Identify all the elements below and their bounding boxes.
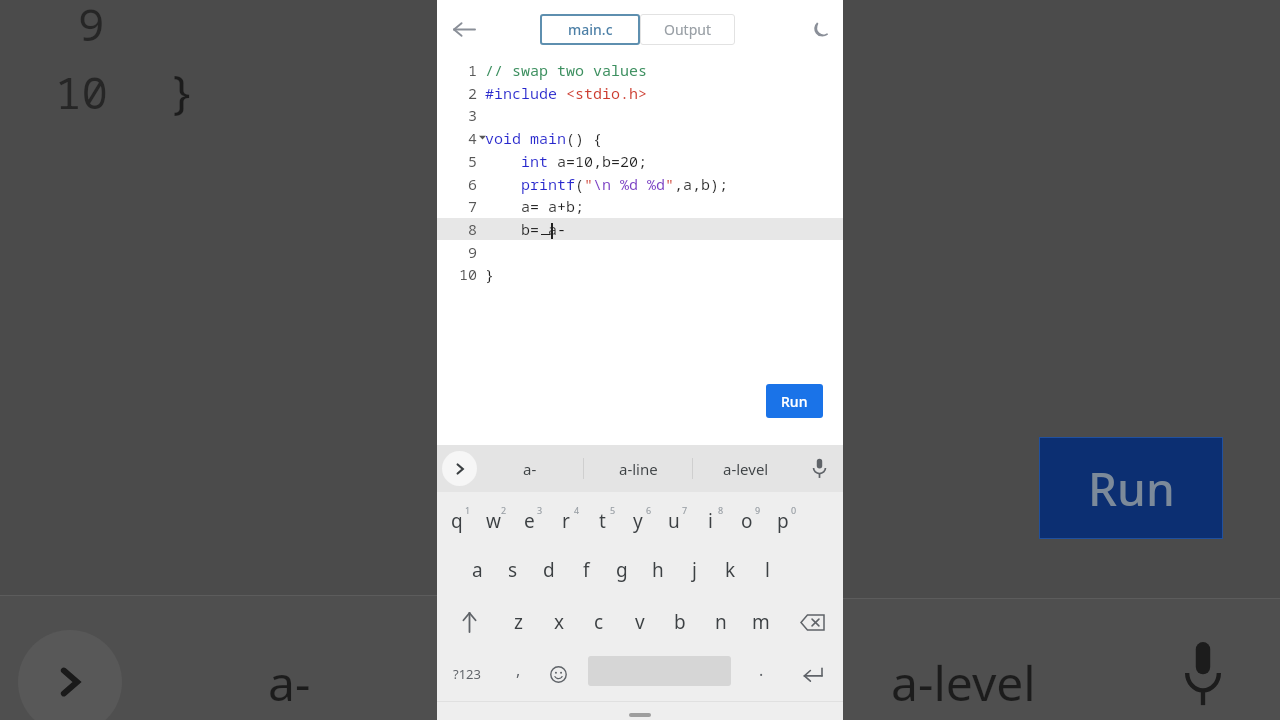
staticText: a= a+b; [485,196,585,216]
staticText: a- [268,650,311,715]
button[interactable]: m [741,596,781,648]
button[interactable]: a [459,544,495,596]
staticText: 10 [437,264,477,284]
staticText: p [777,508,789,534]
staticText: 1 [437,60,477,80]
staticText: q [451,508,463,534]
staticText: Run [1088,457,1175,520]
staticText: void main() { [485,128,603,148]
button[interactable]: x [539,596,579,648]
button[interactable]: Expand suggestions [442,451,477,486]
staticText: v [635,609,645,635]
button[interactable]: k [712,544,748,596]
button[interactable]: Backspace [792,596,832,648]
button[interactable]: d [531,544,567,596]
button[interactable]: y [620,492,656,544]
button[interactable]: Run [766,384,823,418]
staticText: int a=10,b=20; [485,151,648,171]
button[interactable]: Voice input [802,451,837,486]
staticText: a-level [723,459,769,479]
button[interactable]: n [701,596,741,648]
button[interactable]: w [475,492,511,544]
button[interactable]: Dark mode [802,12,839,49]
button[interactable]: e [511,492,547,544]
staticText: a-level [891,650,1036,715]
staticText: Run [781,392,808,411]
button[interactable]: . [741,648,781,700]
staticText: 5 [610,504,616,516]
staticText: i [708,508,713,534]
button[interactable]: j [676,544,712,596]
staticText: } [485,264,495,284]
staticText: w [486,508,501,534]
button[interactable]: f [568,544,604,596]
button[interactable]: o [729,492,765,544]
button[interactable]: g [604,544,640,596]
staticText: e [524,508,535,534]
button[interactable]: Enter [792,648,832,700]
staticText: 8 [718,504,724,516]
button[interactable]: t [584,492,620,544]
staticText: a-line [619,459,658,479]
button[interactable]: p [765,492,801,544]
staticText: o [741,508,753,534]
staticText: b [674,609,686,635]
staticText: x [554,609,565,635]
staticText: t [599,508,606,534]
staticText: s [508,557,518,583]
staticText: d [543,557,555,583]
staticText: 2 [501,504,507,516]
button[interactable]: Output [640,14,735,45]
button[interactable]: c [579,596,619,648]
button[interactable]: r [548,492,584,544]
staticText: 8 [437,219,477,239]
staticText: u [668,508,680,534]
button[interactable]: u [656,492,692,544]
staticText: 0 [791,504,797,516]
staticText: main.c [568,20,613,39]
button[interactable]: a- [480,445,580,492]
staticText: 9 [78,0,105,54]
staticText: 6 [646,504,652,516]
staticText: // swap two values [485,60,648,80]
staticText: 7 [437,196,477,216]
staticText: j [692,557,697,583]
button[interactable]: i [692,492,728,544]
staticText: 3 [437,105,477,125]
staticText: 1 [465,504,471,516]
button[interactable]: v [620,596,660,648]
staticText: . [759,659,764,681]
button[interactable]: a-line [588,445,688,492]
button[interactable]: l [749,544,785,596]
button[interactable]: a-level [696,445,796,492]
staticText: 4 [574,504,580,516]
staticText: 5 [437,151,477,171]
staticText: l [765,557,770,583]
staticText: a- [523,459,537,479]
staticText: printf("\n %d %d",a,b); [485,174,729,194]
staticText: n [715,609,727,635]
button[interactable]: main.c [540,14,640,45]
staticText: a [472,557,483,583]
button[interactable]: ?123 [439,648,495,700]
staticText: m [752,609,770,635]
button[interactable]: b [660,596,700,648]
staticText: 10 [55,62,108,122]
staticText: #include <stdio.h> [485,83,648,103]
staticText: 4 [437,128,477,148]
button[interactable]: h [640,544,676,596]
staticText: k [725,557,736,583]
staticText: 2 [437,83,477,103]
staticText: r [562,508,570,534]
staticText: 7 [682,504,688,516]
button[interactable]: , [498,648,538,700]
button[interactable]: Shift [449,596,489,648]
staticText: h [652,557,664,583]
staticText: y [633,508,643,534]
button[interactable]: Emoji [538,648,578,700]
button[interactable]: Back [445,10,483,48]
button[interactable]: s [495,544,531,596]
button[interactable]: z [498,596,538,648]
button[interactable]: q [439,492,475,544]
